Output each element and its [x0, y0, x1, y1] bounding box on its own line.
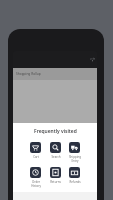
button[interactable]: Shipping Entry	[65, 142, 84, 163]
staticText: Frequently visited	[34, 128, 77, 135]
staticText: Order History	[31, 180, 41, 188]
staticText: Returns	[50, 180, 61, 184]
staticText: Cart	[33, 155, 39, 159]
button[interactable]: Order History	[26, 167, 45, 188]
button[interactable]: Returns	[46, 167, 65, 184]
staticText: Shopping Rollup	[16, 72, 41, 76]
button[interactable]: Cart	[26, 142, 45, 159]
button[interactable]: Refunds	[65, 167, 84, 184]
button[interactable]: Shopping Rollup	[13, 68, 97, 80]
button[interactable]: Search	[46, 142, 65, 159]
staticText: Shipping Entry	[69, 155, 81, 163]
staticText: Refunds	[69, 180, 81, 184]
staticText: Search	[51, 155, 61, 159]
other: Status icons	[90, 57, 95, 62]
